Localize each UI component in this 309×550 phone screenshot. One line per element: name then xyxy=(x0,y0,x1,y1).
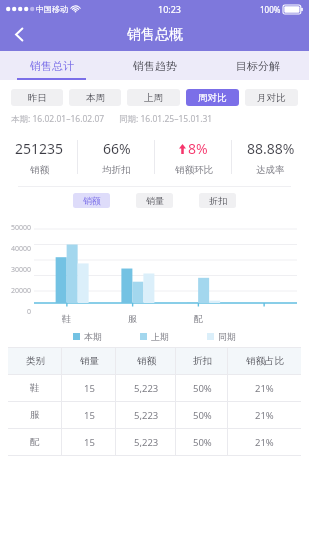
button[interactable]: Back xyxy=(0,18,38,51)
staticText: 销售趋势 xyxy=(133,59,177,73)
staticText: 同期: 16.01.25–15.01.31 xyxy=(119,113,213,125)
staticText: 折扣 xyxy=(209,195,227,206)
staticText: 折扣 xyxy=(193,355,212,367)
staticText: 销额环比 xyxy=(175,164,213,176)
staticText: 均折扣 xyxy=(102,164,131,176)
staticText: 40000 xyxy=(10,244,31,254)
button[interactable]: 销量 xyxy=(136,193,173,208)
button[interactable]: 月对比 xyxy=(245,89,298,106)
staticText: 服 xyxy=(30,409,40,421)
button[interactable]: 鞋 xyxy=(8,375,301,401)
staticText: 50% xyxy=(193,436,212,449)
staticText: 目标分解 xyxy=(236,59,280,73)
staticText: 销售总计 xyxy=(30,59,74,73)
button[interactable]: 周对比 xyxy=(186,89,239,106)
staticText: 88.88% xyxy=(247,139,295,158)
staticText: 上期 xyxy=(151,331,169,342)
staticText: 8% xyxy=(188,139,208,158)
button[interactable]: 目标分解 xyxy=(206,51,309,80)
staticText: 20000 xyxy=(10,286,31,296)
staticText: 达成率 xyxy=(256,164,285,176)
staticText: 251235 xyxy=(15,139,64,158)
staticText: 昨日 xyxy=(28,92,47,104)
staticText: 鞋 xyxy=(62,313,71,324)
button[interactable]: 服 xyxy=(8,402,301,428)
staticText: 周对比 xyxy=(198,92,227,104)
staticText: 类别 xyxy=(26,355,45,367)
button[interactable]: 本周 xyxy=(69,89,121,106)
staticText: 上周 xyxy=(144,92,163,104)
staticText: 鞋 xyxy=(30,382,40,394)
staticText: 100% xyxy=(260,4,281,15)
staticText: 21% xyxy=(255,409,274,422)
staticText: 5,223 xyxy=(134,409,159,422)
staticText: 服 xyxy=(128,313,137,324)
staticText: 50000 xyxy=(10,223,31,233)
staticText: 21% xyxy=(255,436,274,449)
staticText: 10:23 xyxy=(158,3,182,15)
staticText: 本期 xyxy=(84,331,102,342)
button[interactable]: 上周 xyxy=(127,89,180,106)
button[interactable]: 销售总计 xyxy=(0,51,103,80)
staticText: 5,223 xyxy=(134,382,159,395)
staticText: 销额 xyxy=(83,195,101,206)
staticText: 配 xyxy=(194,313,203,324)
staticText: 销额 xyxy=(137,355,156,367)
button[interactable]: 昨日 xyxy=(11,89,63,106)
staticText: 5,223 xyxy=(134,436,159,449)
button[interactable]: 折扣 xyxy=(199,193,236,208)
staticText: 销额占比 xyxy=(246,355,284,367)
staticText: 本周 xyxy=(86,92,105,104)
staticText: 本期: 16.02.01–16.02.07 xyxy=(11,113,105,125)
staticText: 66% xyxy=(103,139,131,158)
staticText: 15 xyxy=(84,409,95,422)
staticText: 50% xyxy=(193,382,212,395)
staticText: 中国移动 xyxy=(36,4,68,14)
staticText: 月对比 xyxy=(257,92,286,104)
staticText: 30000 xyxy=(10,265,31,275)
button[interactable]: 销额 xyxy=(73,193,110,208)
button[interactable]: 配 xyxy=(8,429,301,455)
staticText: 销量 xyxy=(146,195,164,206)
staticText: 销额 xyxy=(30,164,49,176)
staticText: 配 xyxy=(30,436,40,448)
staticText: 15 xyxy=(84,436,95,449)
staticText: 50% xyxy=(193,409,212,422)
button[interactable]: 销售趋势 xyxy=(103,51,206,80)
staticText: 销量 xyxy=(80,355,99,367)
staticText: 15 xyxy=(84,382,95,395)
staticText: 同期 xyxy=(218,331,236,342)
staticText: 21% xyxy=(255,382,274,395)
staticText: 销售总概 xyxy=(127,26,183,44)
staticText: 0 xyxy=(26,307,31,317)
